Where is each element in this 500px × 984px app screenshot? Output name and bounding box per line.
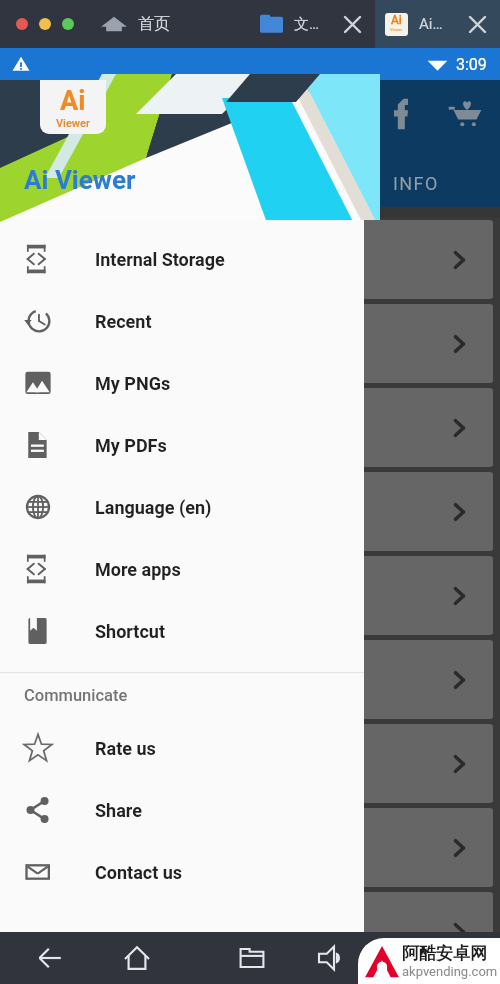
button[interactable]: Language (en) — [0, 476, 364, 538]
staticText: Ai Viewer — [24, 165, 136, 195]
staticText: Recent — [95, 311, 152, 332]
staticText: 阿酷安卓网 — [402, 943, 487, 964]
button[interactable]: Recent — [0, 290, 364, 352]
button[interactable]: Home — [119, 940, 155, 976]
button[interactable] — [4, 724, 493, 803]
staticText: More apps — [95, 559, 181, 580]
staticText: Shortcut — [95, 621, 165, 642]
staticText: Contact us — [95, 862, 183, 883]
button[interactable]: Volume — [313, 940, 349, 976]
staticText: INFO — [393, 173, 439, 194]
staticText: Communicate — [24, 686, 128, 705]
staticText: 3:09 — [456, 55, 487, 74]
button[interactable]: INFO — [376, 160, 456, 206]
staticText: Internal Storage — [95, 249, 225, 270]
button[interactable]: Close tab — [460, 7, 494, 41]
button[interactable] — [4, 808, 493, 887]
staticText: akpvending.com — [402, 964, 498, 979]
button[interactable] — [4, 304, 493, 383]
button[interactable]: Share — [0, 779, 364, 841]
button[interactable]: My PDFs — [0, 414, 364, 476]
button[interactable]: 文… — [250, 0, 375, 48]
button[interactable] — [4, 388, 493, 467]
staticText: Viewer — [390, 27, 403, 32]
button[interactable]: Recent apps — [234, 940, 270, 976]
button[interactable]: Ai — [375, 0, 500, 48]
staticText: Share — [95, 800, 142, 821]
staticText: My PDFs — [95, 435, 167, 456]
button[interactable]: Rate us — [0, 717, 364, 779]
staticText: Language (en) — [95, 497, 212, 518]
button[interactable] — [4, 472, 493, 551]
staticText: 首页 — [138, 14, 170, 34]
button[interactable] — [4, 220, 493, 299]
button[interactable]: Install APK — [389, 940, 425, 976]
staticText: Ai — [391, 13, 402, 27]
staticText: My PNGs — [95, 373, 171, 394]
button[interactable] — [4, 640, 493, 719]
button[interactable]: Internal Storage — [0, 228, 364, 290]
button[interactable]: Shortcut — [0, 600, 364, 662]
button[interactable] — [4, 556, 493, 635]
staticText: 文… — [294, 15, 320, 34]
button[interactable]: More apps — [0, 538, 364, 600]
staticText: Ai… — [419, 15, 443, 33]
button[interactable]: Back — [32, 940, 68, 976]
button[interactable]: Facebook — [385, 98, 417, 130]
button[interactable]: Close tab — [335, 7, 369, 41]
button[interactable]: Shopping cart — [448, 97, 482, 131]
staticText: Viewer — [56, 117, 90, 130]
button[interactable]: My PNGs — [0, 352, 364, 414]
button[interactable] — [4, 892, 493, 971]
button[interactable]: Contact us — [0, 841, 364, 903]
staticText: Rate us — [95, 738, 156, 759]
staticText: Ai — [60, 85, 86, 117]
